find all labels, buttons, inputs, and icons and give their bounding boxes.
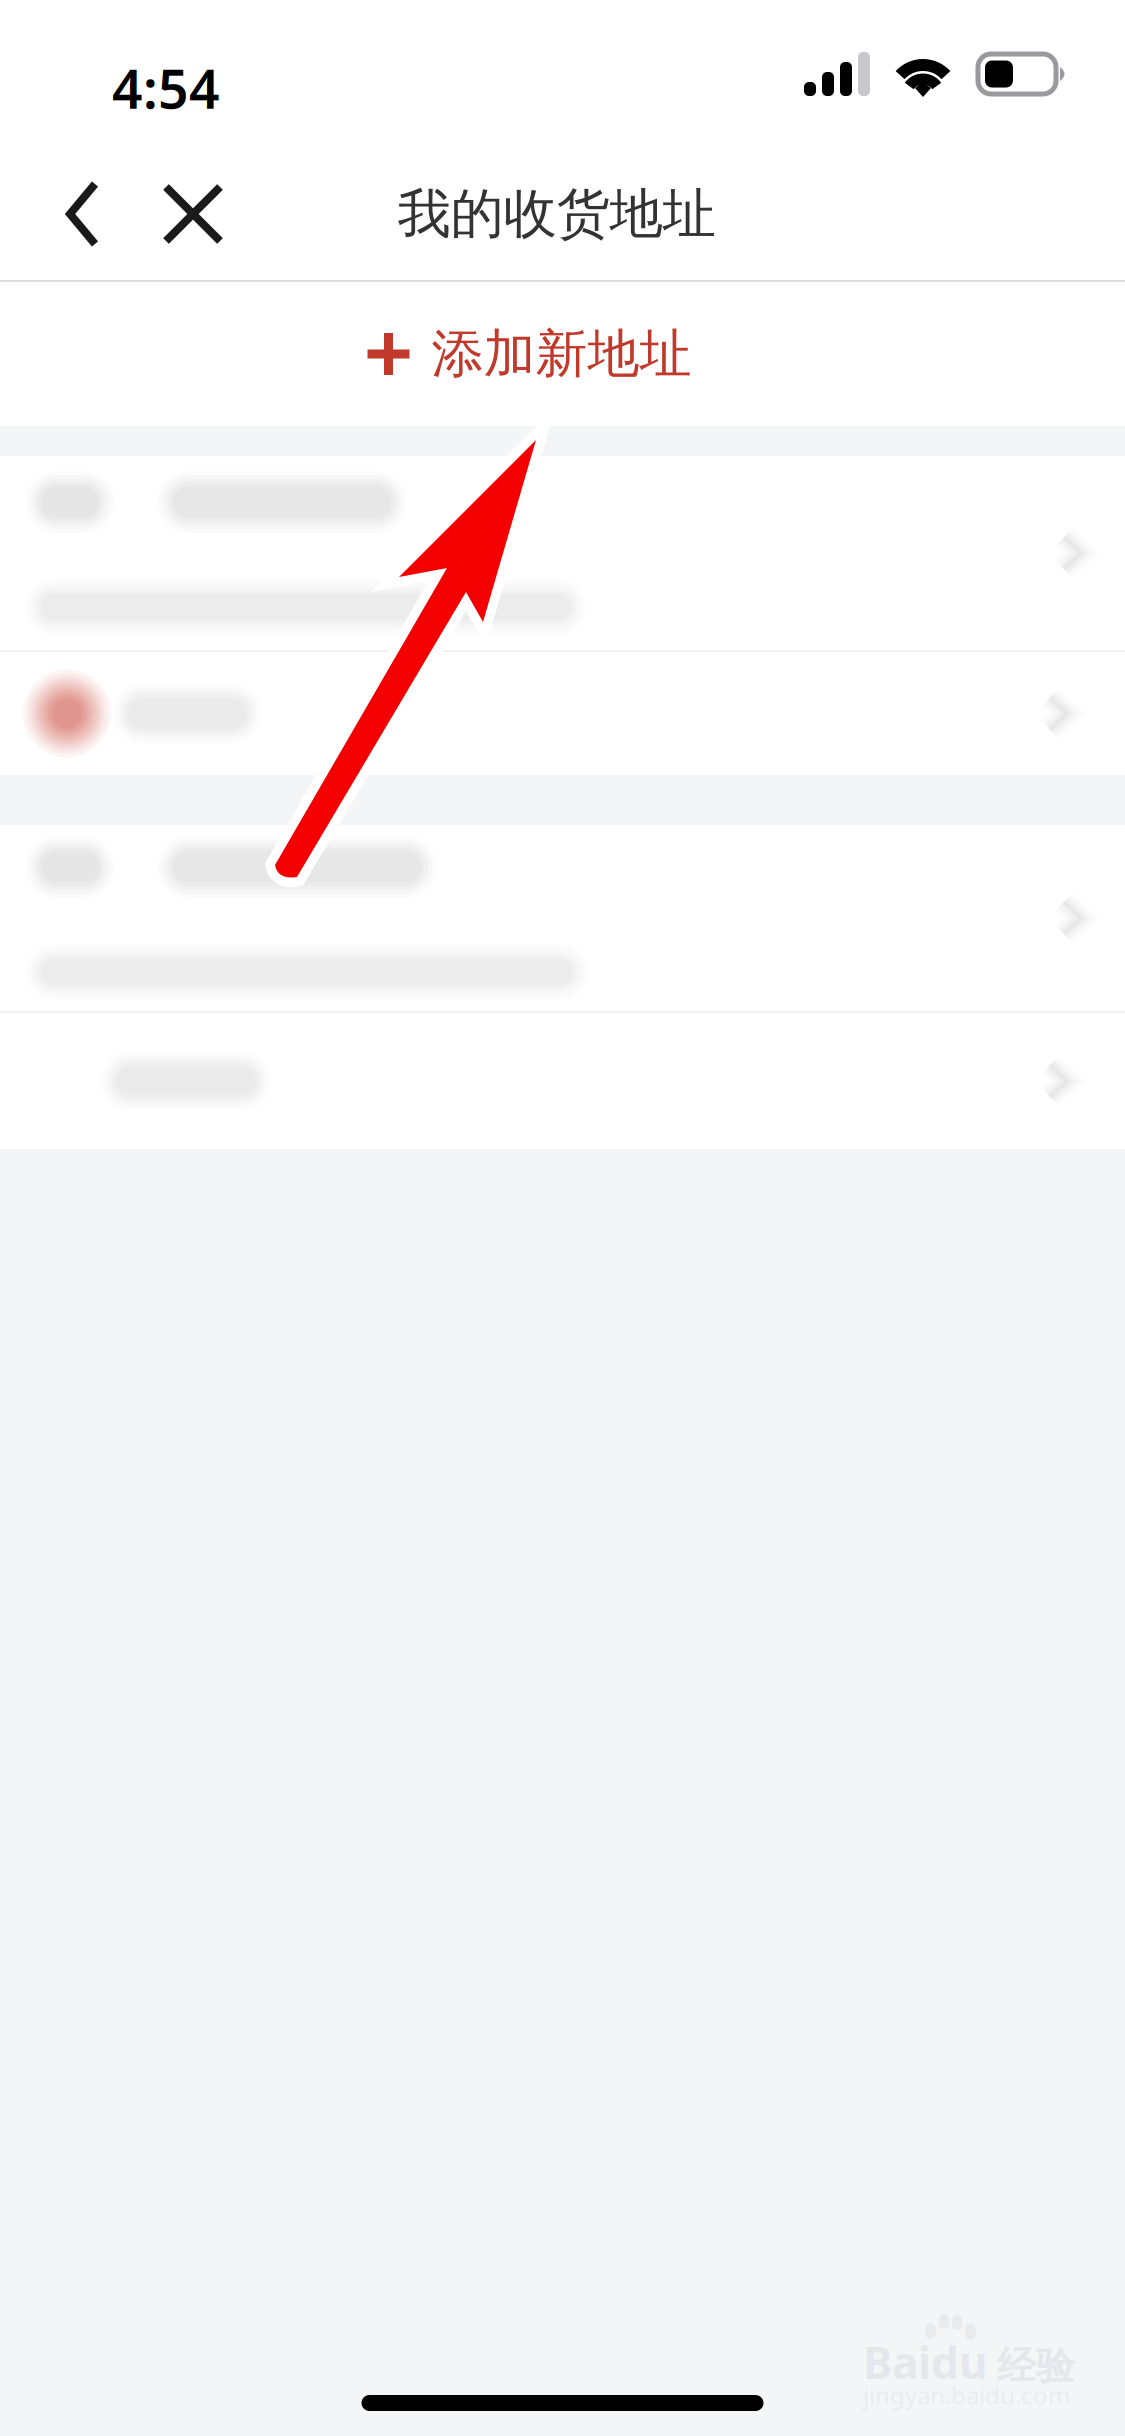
button[interactable]: Close xyxy=(138,155,248,273)
staticText: 添加新地址 xyxy=(431,322,691,386)
staticText: 4:54 xyxy=(112,53,220,123)
button[interactable] xyxy=(0,825,1125,1011)
staticText: 我的收货地址 xyxy=(397,181,715,247)
button[interactable]: Back xyxy=(28,155,138,273)
staticText: Baidu xyxy=(863,2333,988,2391)
button[interactable] xyxy=(0,456,1125,650)
button[interactable]: 添加新地址 xyxy=(0,282,1125,426)
staticText: jingyan.baidu.com xyxy=(863,2379,1070,2411)
button[interactable] xyxy=(0,1013,1125,1149)
staticText: 经验 xyxy=(997,2342,1075,2390)
button[interactable] xyxy=(0,652,1125,775)
